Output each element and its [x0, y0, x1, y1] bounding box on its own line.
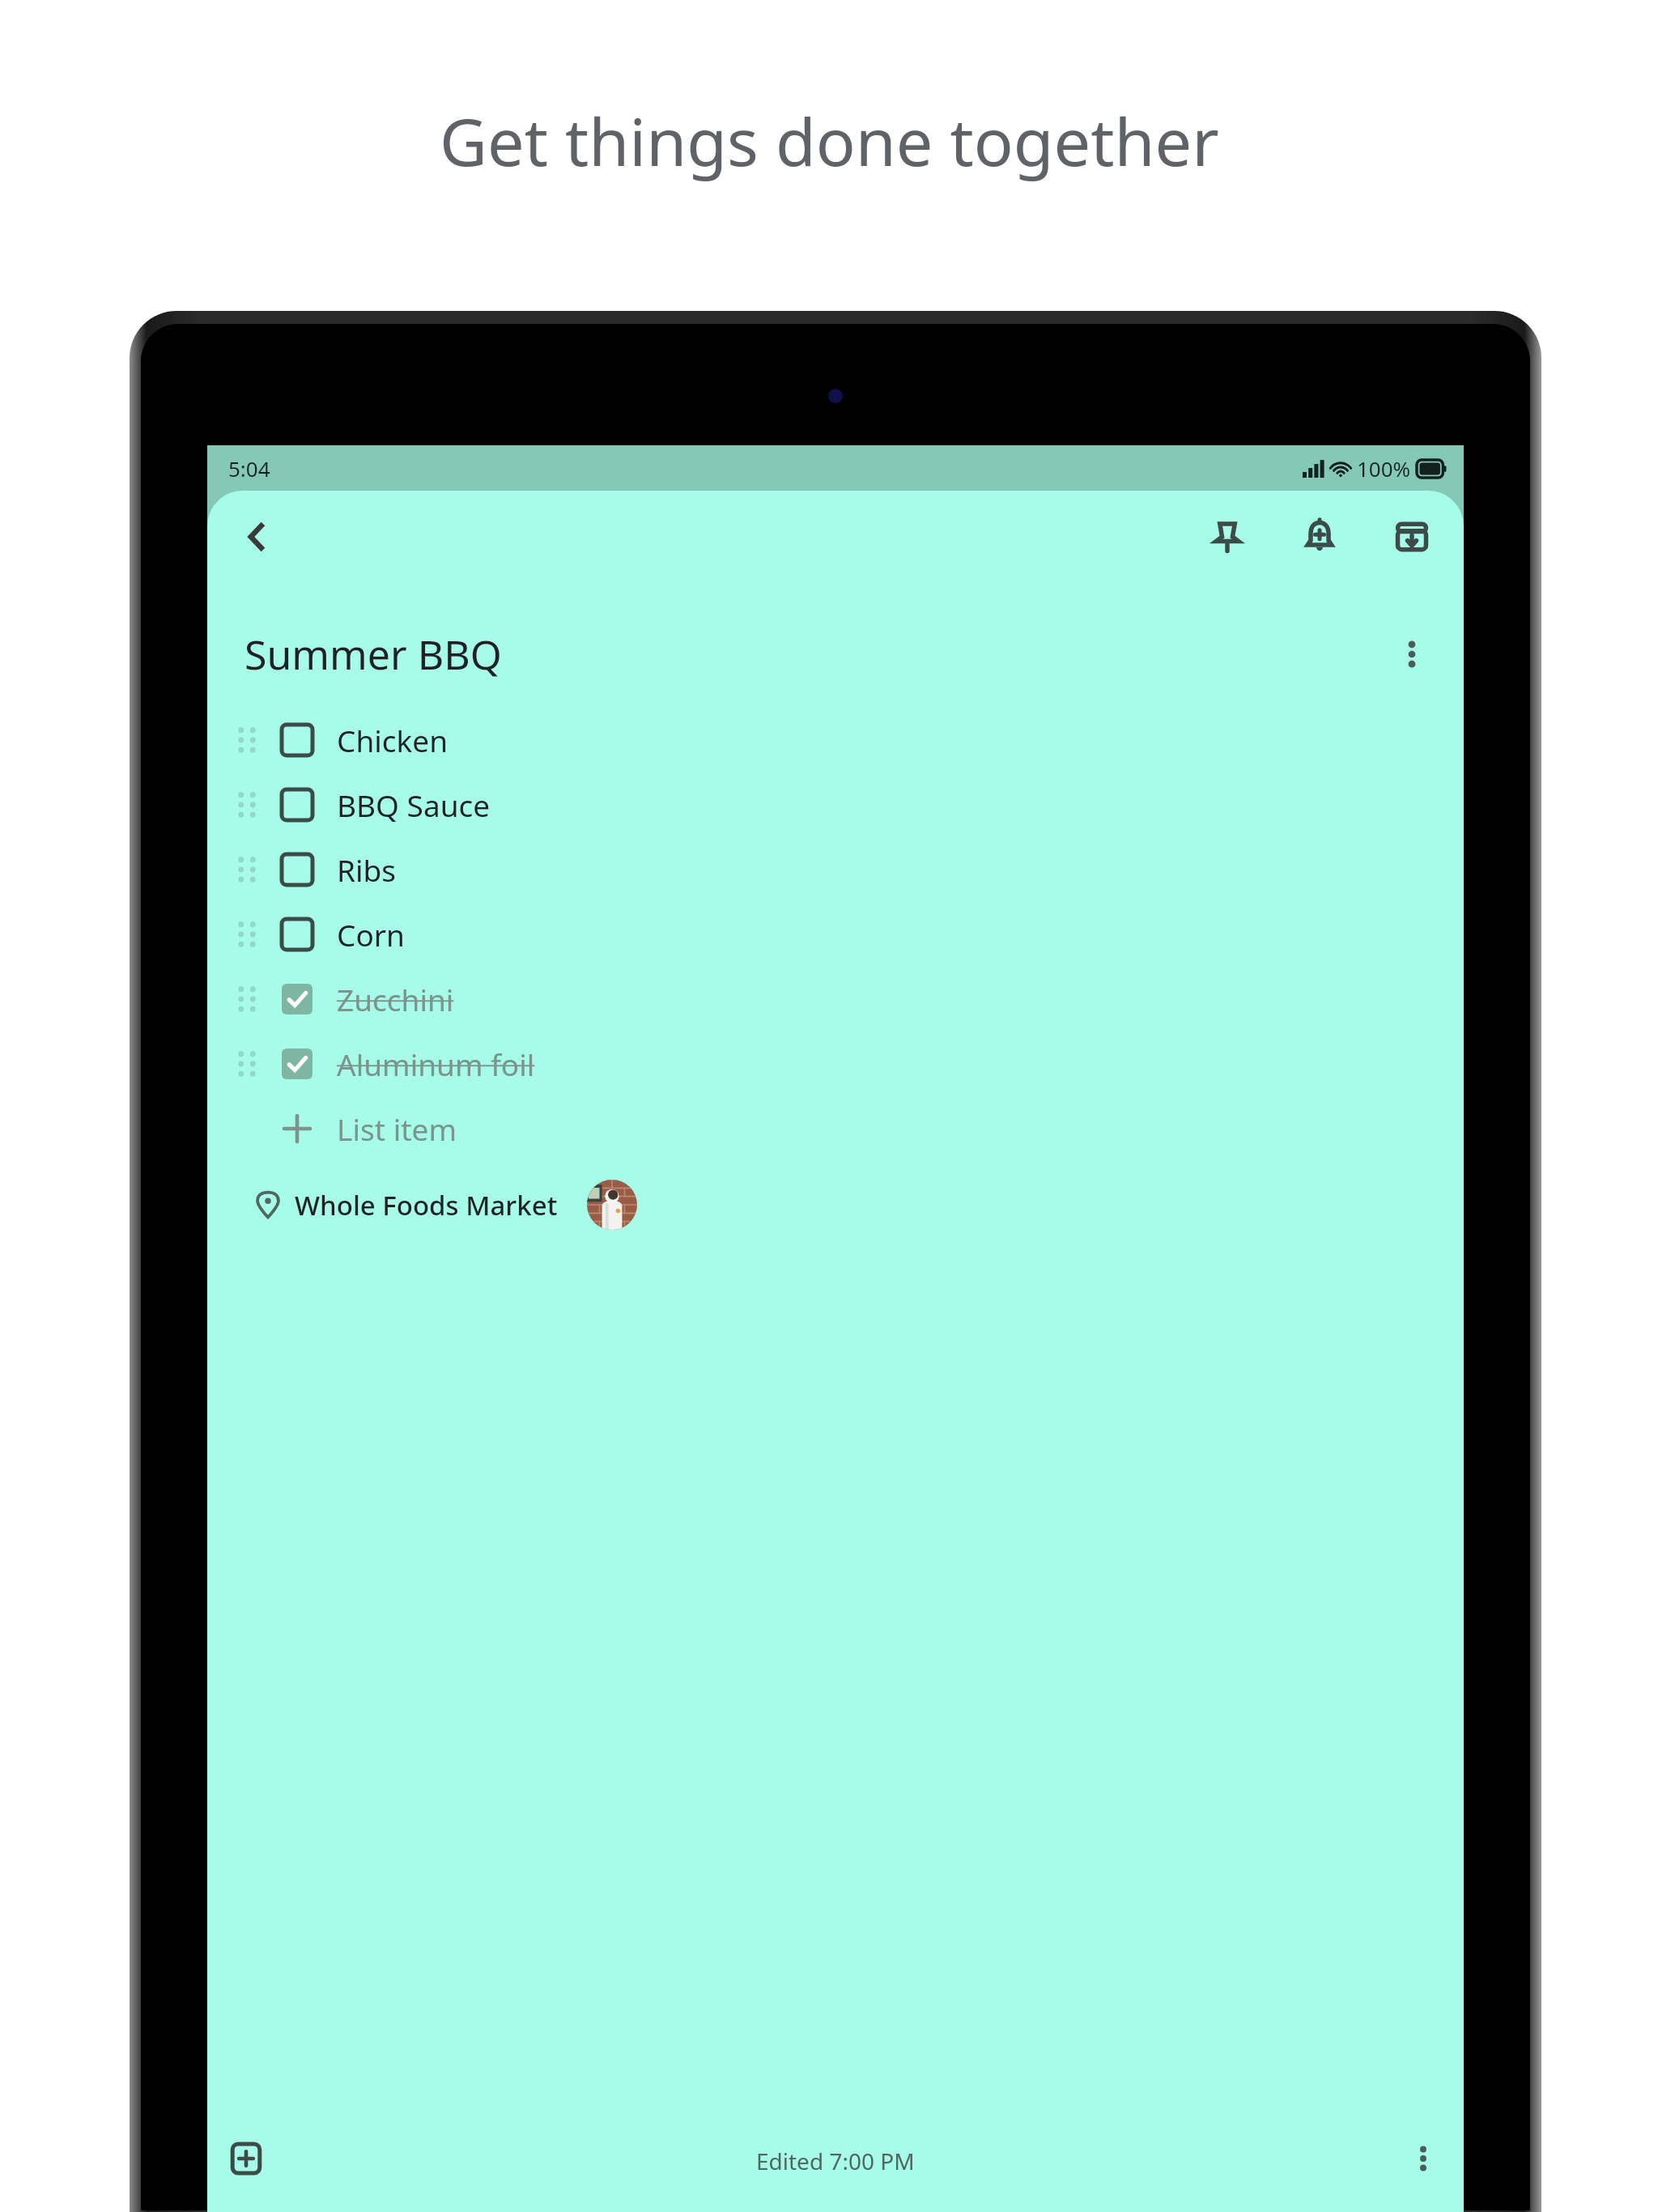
button[interactable]: Chicken: [207, 708, 1464, 772]
staticText: Get things done together: [440, 96, 1219, 185]
staticText: 100%: [1357, 454, 1411, 483]
staticText: Edited 7:00 PM: [756, 2146, 915, 2176]
staticText: List item: [337, 1108, 457, 1149]
button[interactable]: Corn: [207, 902, 1464, 967]
button[interactable]: Archive: [1378, 503, 1446, 571]
staticText: Whole Foods Market: [295, 1187, 558, 1223]
button[interactable]: Pin note: [1193, 503, 1261, 571]
staticText: Ribs: [337, 849, 397, 890]
button[interactable]: Aluminum foil: [207, 1032, 1464, 1096]
button[interactable]: Collaborator: [587, 1180, 637, 1230]
button[interactable]: Add to note: [215, 2128, 277, 2189]
staticText: Chicken: [337, 720, 449, 760]
button[interactable]: Ribs: [207, 837, 1464, 902]
staticText: Aluminum foil: [337, 1044, 535, 1084]
staticText: Summer BBQ: [244, 627, 502, 682]
staticText: BBQ Sauce: [337, 785, 491, 825]
button[interactable]: BBQ Sauce: [207, 772, 1464, 837]
button[interactable]: Zucchini: [207, 967, 1464, 1032]
staticText: 5:04: [228, 454, 270, 483]
staticText: Zucchini: [337, 979, 454, 1019]
button[interactable]: Note options: [1380, 622, 1444, 687]
button[interactable]: List item: [207, 1096, 1464, 1161]
button[interactable]: Back: [223, 504, 290, 570]
button[interactable]: More options: [1392, 2128, 1454, 2189]
button[interactable]: Add reminder: [1286, 503, 1354, 571]
button[interactable]: Whole Foods Market: [236, 1177, 576, 1232]
staticText: Corn: [337, 914, 405, 955]
